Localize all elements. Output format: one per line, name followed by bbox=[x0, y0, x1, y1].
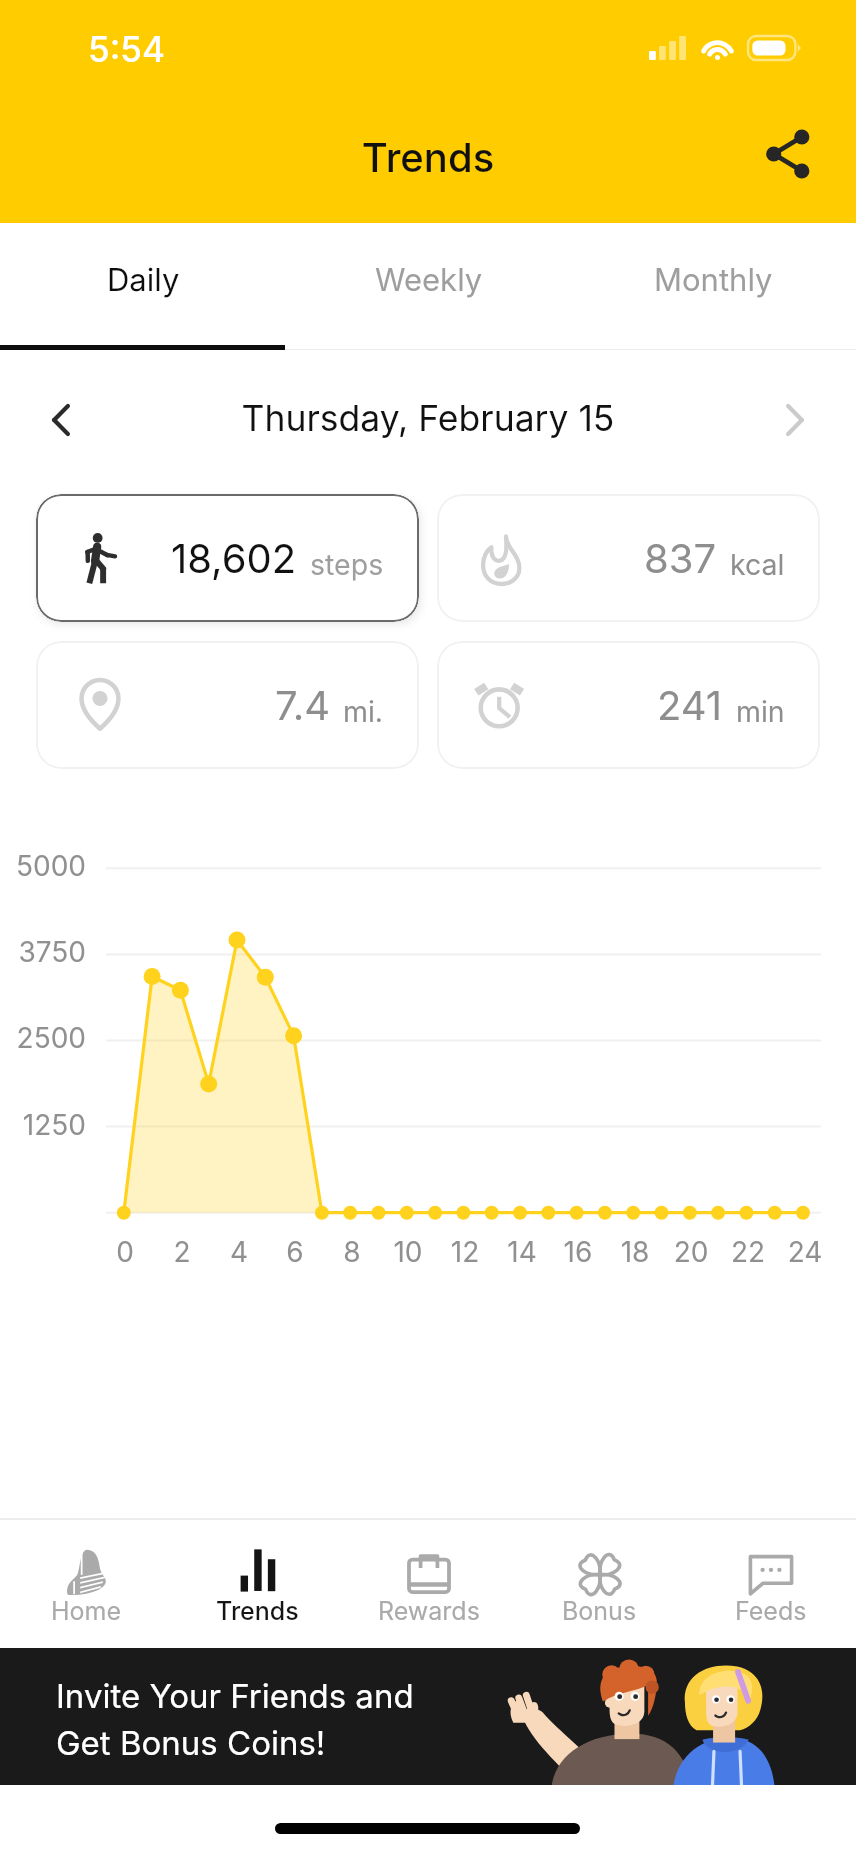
button[interactable]: Share bbox=[756, 122, 820, 186]
staticText: 16 bbox=[548, 1235, 608, 1269]
staticText: Rewards bbox=[378, 1596, 480, 1626]
staticText: 2 bbox=[152, 1235, 212, 1269]
staticText: Thursday, February 15 bbox=[0, 397, 856, 440]
staticText: 5000 bbox=[3, 849, 86, 883]
staticText: 4 bbox=[209, 1235, 269, 1269]
button[interactable]: 18,602 bbox=[36, 494, 419, 622]
staticText: Get Bonus Coins! bbox=[56, 1723, 326, 1763]
button[interactable]: Rewards bbox=[343, 1518, 514, 1648]
staticText: 10 bbox=[378, 1235, 438, 1269]
button[interactable]: 241 bbox=[437, 641, 820, 769]
button[interactable]: Monthly bbox=[571, 223, 856, 350]
staticText: 7.4 bbox=[275, 681, 330, 729]
staticText: min bbox=[736, 694, 785, 728]
staticText: 22 bbox=[718, 1235, 778, 1269]
staticText: 8 bbox=[322, 1235, 382, 1269]
staticText: 12 bbox=[435, 1235, 495, 1269]
button[interactable]: Trends bbox=[172, 1518, 343, 1648]
button[interactable]: 837 bbox=[437, 494, 820, 622]
staticText: Monthly bbox=[654, 261, 773, 299]
button[interactable]: Invite Your Friends and bbox=[0, 1648, 856, 1785]
button[interactable]: Bonus bbox=[514, 1518, 685, 1648]
staticText: steps bbox=[310, 547, 384, 581]
staticText: 24 bbox=[775, 1235, 835, 1269]
staticText: 1250 bbox=[3, 1108, 86, 1142]
staticText: 18,602 bbox=[171, 534, 297, 582]
button[interactable]: Next day bbox=[763, 388, 827, 452]
staticText: Invite Your Friends and bbox=[56, 1676, 414, 1716]
staticText: Weekly bbox=[375, 261, 483, 299]
staticText: Trends bbox=[216, 1596, 299, 1626]
button[interactable]: Daily bbox=[0, 223, 286, 350]
button[interactable]: Feeds bbox=[685, 1518, 856, 1648]
staticText: 18 bbox=[605, 1235, 665, 1269]
staticText: 5:54 bbox=[88, 28, 165, 70]
staticText: 241 bbox=[657, 681, 723, 729]
staticText: mi. bbox=[343, 694, 384, 728]
button[interactable]: Home bbox=[0, 1518, 172, 1648]
staticText: Home bbox=[51, 1596, 122, 1626]
staticText: Bonus bbox=[562, 1596, 637, 1626]
staticText: 6 bbox=[265, 1235, 325, 1269]
staticText: 0 bbox=[95, 1235, 155, 1269]
staticText: Trends bbox=[0, 133, 856, 181]
staticText: Feeds bbox=[735, 1596, 807, 1626]
staticText: kcal bbox=[730, 547, 785, 581]
staticText: 2500 bbox=[3, 1021, 86, 1055]
button[interactable]: Weekly bbox=[286, 223, 571, 350]
staticText: 20 bbox=[661, 1235, 721, 1269]
staticText: 837 bbox=[644, 534, 717, 582]
staticText: Daily bbox=[107, 261, 180, 299]
button[interactable]: Previous day bbox=[29, 388, 93, 452]
button[interactable]: 7.4 bbox=[36, 641, 419, 769]
staticText: 3750 bbox=[3, 935, 86, 969]
staticText: 14 bbox=[492, 1235, 552, 1269]
